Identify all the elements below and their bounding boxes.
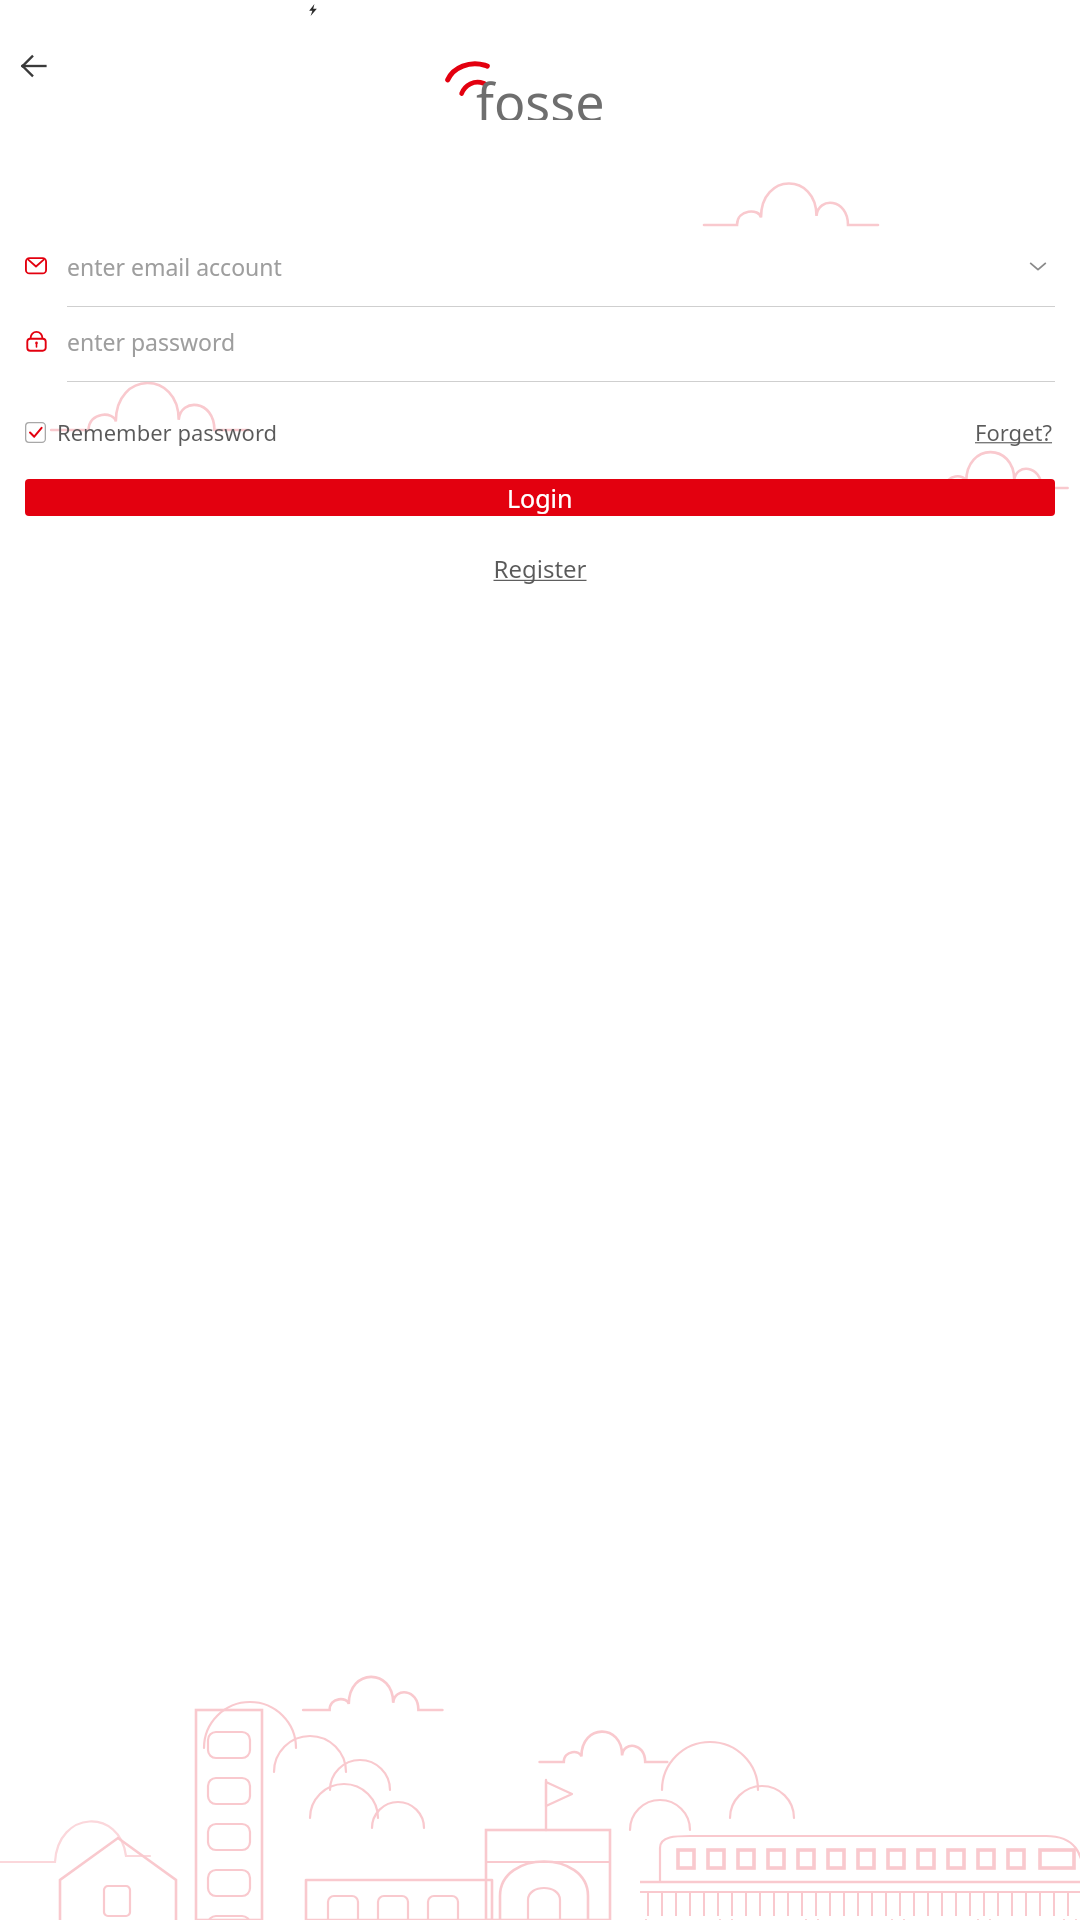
button[interactable]: Forget?	[973, 413, 1055, 451]
staticText: Forget?	[975, 417, 1053, 447]
button[interactable]: Login	[25, 479, 1055, 516]
button[interactable]: enter email account	[25, 248, 1055, 284]
button[interactable]: Show accounts	[1025, 253, 1051, 279]
button[interactable]: Remember password	[25, 413, 278, 451]
staticText: fosse	[476, 66, 605, 120]
button[interactable]: Back	[8, 40, 60, 92]
staticText: enter email account	[67, 251, 282, 282]
button[interactable]: Register	[487, 546, 593, 591]
staticText: enter password	[67, 326, 236, 357]
staticText: Register	[493, 552, 587, 585]
button[interactable]: enter password	[25, 323, 1055, 359]
staticText: Login	[507, 481, 573, 515]
staticText: Remember password	[57, 417, 278, 447]
